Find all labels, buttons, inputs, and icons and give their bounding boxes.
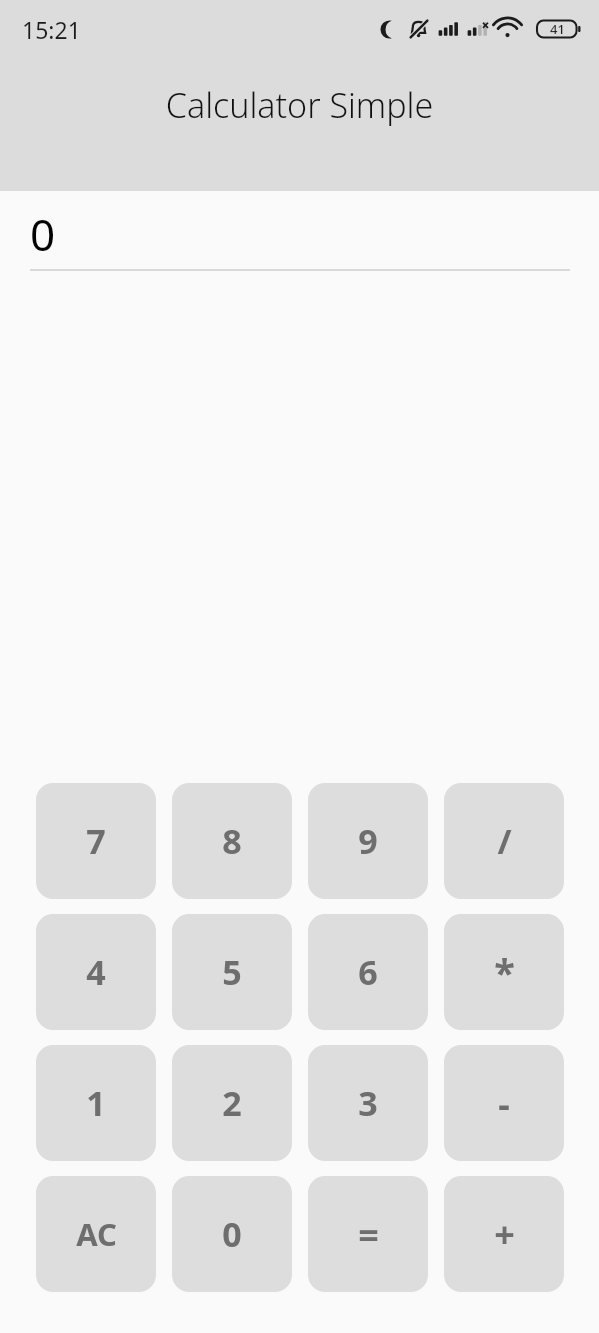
button[interactable]: 2 [172, 1045, 292, 1161]
staticText: 9 [358, 818, 378, 864]
button[interactable]: / [444, 783, 564, 899]
button[interactable]: = [308, 1176, 428, 1292]
staticText: - [498, 1079, 510, 1128]
staticText: / [497, 818, 512, 864]
staticText: = [358, 1210, 379, 1259]
staticText: 15:21 [22, 14, 81, 45]
staticText: 2 [222, 1080, 242, 1126]
staticText: 8 [222, 818, 242, 864]
button[interactable]: 6 [308, 914, 428, 1030]
staticText: AC [76, 1213, 117, 1255]
staticText: 6 [358, 949, 378, 995]
staticText: 41 [550, 20, 565, 38]
button[interactable]: 8 [172, 783, 292, 899]
staticText: 7 [86, 818, 106, 864]
button[interactable]: 3 [308, 1045, 428, 1161]
staticText: 4 [86, 949, 106, 995]
button[interactable]: AC [36, 1176, 156, 1292]
staticText: + [494, 1210, 515, 1259]
button[interactable]: * [444, 914, 564, 1030]
button[interactable]: 1 [36, 1045, 156, 1161]
button[interactable]: + [444, 1176, 564, 1292]
button[interactable]: 4 [36, 914, 156, 1030]
staticText: * [494, 946, 515, 998]
button[interactable]: 5 [172, 914, 292, 1030]
staticText: 3 [358, 1080, 378, 1126]
staticText: 1 [86, 1080, 106, 1126]
staticText: 0 [30, 204, 56, 264]
staticText: Calculator Simple [0, 82, 599, 128]
button[interactable]: 0 [172, 1176, 292, 1292]
button[interactable]: 9 [308, 783, 428, 899]
button[interactable]: - [444, 1045, 564, 1161]
button[interactable]: 7 [36, 783, 156, 899]
staticText: 0 [222, 1211, 242, 1257]
staticText: 5 [222, 949, 242, 995]
